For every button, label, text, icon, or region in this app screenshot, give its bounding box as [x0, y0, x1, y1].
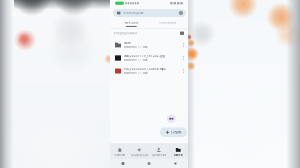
button[interactable]: Недавние — [110, 162, 136, 165]
button[interactable]: Главный экран — [136, 162, 162, 165]
staticText: Помеченные — [131, 153, 148, 157]
button[interactable]: Мой диск — [113, 21, 149, 27]
staticText: Изменено 11 мая — [124, 71, 148, 75]
staticText: Файлы — [174, 153, 183, 157]
button[interactable]: Вид списка — [180, 32, 184, 35]
staticText: Изменено 11 мая — [124, 58, 148, 62]
button[interactable]: Компьютеры — [149, 21, 186, 27]
button[interactable]: Объектив — [110, 0, 188, 168]
staticText: Главная — [114, 153, 125, 157]
staticText: Фото — [124, 41, 131, 45]
staticText: Мой диск — [125, 21, 138, 24]
staticText: Создать — [171, 130, 181, 134]
staticText: VID_20230209_124838.mp4 — [124, 67, 166, 71]
button[interactable]: VID_20230209_124838.mp4 — [110, 0, 188, 168]
button[interactable]: Фото — [110, 0, 188, 168]
staticText: Доступные — [152, 153, 166, 157]
staticText: IMG_20231119_181242.jpg — [124, 54, 165, 58]
button[interactable]: Упорядочить — [114, 31, 137, 35]
button[interactable]: Создать — [110, 0, 188, 168]
staticText: Компьютеры — [159, 21, 176, 24]
button[interactable]: Доступные — [149, 148, 168, 157]
button[interactable]: IMG_20231119_181242.jpg — [110, 0, 188, 168]
staticText: Упорядочить — [114, 31, 134, 35]
button[interactable]: Файлы — [168, 148, 188, 157]
button[interactable]: Назад — [162, 162, 188, 165]
button[interactable]: Поиск на Диске — [110, 0, 188, 168]
staticText: Поиск на Диске — [123, 11, 143, 15]
button[interactable]: Помеченные — [129, 148, 149, 157]
button[interactable]: Главная — [110, 148, 129, 157]
staticText: Изменено 11 мая — [124, 45, 148, 49]
